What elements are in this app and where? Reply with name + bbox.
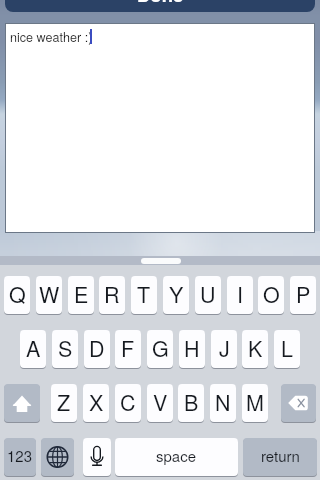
staticText: L [281,332,293,363]
staticText: Z [57,386,71,417]
button[interactable]: C [115,384,141,422]
staticText: H [184,332,200,363]
staticText: B [184,386,199,417]
staticText: nice weather :) [10,28,93,46]
staticText: U [200,278,216,309]
button[interactable]: Q [4,276,30,314]
staticText: I [237,278,243,309]
button[interactable]: J [211,330,237,368]
staticText: space [156,445,197,466]
button[interactable]: return [243,438,317,476]
button[interactable]: V [147,384,173,422]
staticText: P [296,278,311,309]
button[interactable]: H [179,330,205,368]
button[interactable]: Backspace [281,384,316,422]
staticText: F [121,332,135,363]
staticText: O [263,278,280,309]
button[interactable]: M [242,384,268,422]
staticText: Done [137,0,184,7]
staticText: K [248,332,263,363]
staticText: Q [9,278,26,309]
button[interactable]: Change keyboard [41,438,74,476]
button[interactable]: T [131,276,157,314]
button[interactable]: Done [5,0,315,12]
button[interactable]: O [258,276,284,314]
button[interactable]: L [274,330,300,368]
button[interactable]: R [99,276,125,314]
button[interactable]: Z [51,384,77,422]
button[interactable]: G [147,330,173,368]
staticText: W [39,278,60,309]
staticText: J [219,332,230,363]
button[interactable]: I [227,276,253,314]
staticText: Y [169,278,184,309]
staticText: V [153,386,168,417]
button[interactable]: Y [163,276,189,314]
staticText: N [215,386,231,417]
button[interactable]: B [178,384,204,422]
button[interactable]: E [68,276,94,314]
staticText: A [26,332,41,363]
staticText: C [120,386,136,417]
button[interactable]: X [83,384,109,422]
button[interactable]: N [210,384,236,422]
button[interactable]: K [242,330,268,368]
staticText: M [246,386,264,417]
button[interactable]: P [290,276,316,314]
staticText: X [89,386,104,417]
button[interactable]: space [115,438,238,476]
staticText: T [137,278,151,309]
button[interactable]: D [84,330,110,368]
button[interactable]: nice weather :) [6,24,314,232]
staticText: G [152,332,169,363]
button[interactable]: A [20,330,46,368]
button[interactable]: F [115,330,141,368]
staticText: D [89,332,105,363]
staticText: S [58,332,73,363]
staticText: R [104,278,120,309]
button[interactable]: Shift [4,384,40,422]
button[interactable]: S [52,330,78,368]
staticText: return [261,445,300,466]
button[interactable]: 123 [4,438,36,476]
staticText: E [74,278,89,309]
staticText: 123 [7,445,33,466]
button[interactable]: U [195,276,221,314]
button[interactable]: Dictation [83,438,111,476]
button[interactable]: W [36,276,62,314]
